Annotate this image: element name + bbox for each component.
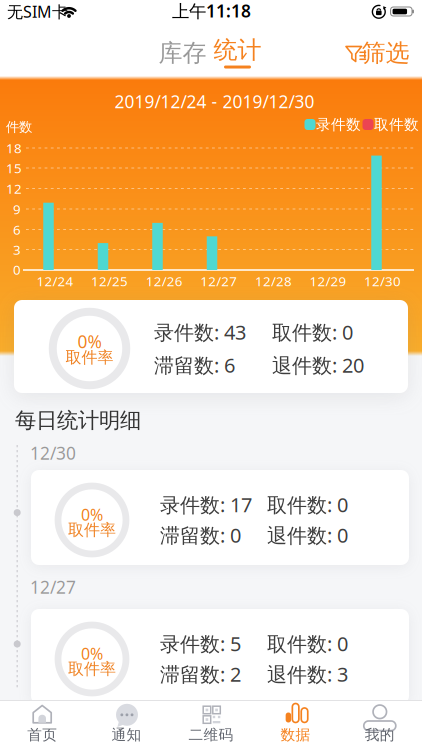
- staticText: 0: [13, 261, 21, 278]
- button[interactable]: 数据: [253, 701, 338, 750]
- staticText: 取件数: 0: [267, 630, 348, 657]
- staticText: 滞留数: 6: [154, 352, 235, 378]
- staticText: 12/24: [36, 272, 73, 290]
- staticText: 取件数: 0: [272, 319, 353, 345]
- staticText: 退件数: 0: [267, 522, 348, 548]
- button[interactable]: 二维码: [169, 701, 253, 750]
- button[interactable]: 统计: [207, 36, 267, 76]
- staticText: 录件数: 5: [160, 630, 241, 657]
- staticText: 录件数: [316, 115, 361, 133]
- button[interactable]: 通知: [84, 701, 169, 750]
- staticText: 取件数: [374, 115, 419, 133]
- staticText: 通知: [112, 726, 142, 744]
- staticText: 录件数: 43: [154, 319, 246, 345]
- staticText: 12/25: [91, 272, 128, 290]
- staticText: 退件数: 3: [267, 661, 348, 687]
- staticText: 12/27: [200, 272, 237, 290]
- staticText: 取件率: [68, 520, 116, 540]
- staticText: 取件数: 0: [267, 491, 348, 518]
- staticText: 6: [13, 221, 21, 238]
- staticText: 12: [6, 180, 22, 197]
- staticText: 12/27: [30, 575, 76, 598]
- staticText: 滞留数: 0: [160, 522, 241, 548]
- staticText: 录件数: 17: [160, 491, 252, 518]
- staticText: 12/29: [309, 272, 346, 290]
- staticText: 9: [13, 200, 21, 218]
- staticText: 退件数: 20: [272, 352, 364, 378]
- button[interactable]: 我的: [338, 701, 422, 750]
- staticText: 取件率: [68, 659, 116, 679]
- staticText: 滞留数: 2: [160, 661, 241, 687]
- staticText: 18: [6, 139, 22, 157]
- button[interactable]: 首页: [0, 701, 84, 750]
- staticText: 每日统计明细: [15, 407, 141, 434]
- staticText: 上午11:18: [172, 0, 251, 22]
- staticText: 0%: [81, 504, 103, 525]
- staticText: 二维码: [188, 726, 233, 744]
- staticText: 12/30: [30, 441, 76, 464]
- staticText: 件数: [6, 119, 32, 135]
- staticText: 我的: [365, 726, 395, 744]
- staticText: 无SIM卡: [7, 1, 68, 22]
- staticText: 3: [13, 241, 21, 258]
- button[interactable]: 库存: [152, 33, 212, 73]
- staticText: 取件率: [65, 347, 113, 367]
- staticText: 筛选: [361, 38, 409, 68]
- button[interactable]: 筛选: [337, 36, 411, 70]
- staticText: 12/26: [146, 272, 183, 290]
- staticText: 首页: [27, 726, 57, 744]
- staticText: 2019/12/24 - 2019/12/30: [114, 90, 314, 113]
- staticText: 0%: [77, 330, 101, 353]
- staticText: 数据: [280, 726, 310, 744]
- staticText: 库存: [158, 38, 206, 68]
- staticText: 统计: [213, 35, 261, 65]
- staticText: 15: [6, 159, 22, 177]
- staticText: 12/28: [255, 272, 292, 290]
- staticText: 0%: [81, 643, 103, 664]
- staticText: 12/30: [364, 272, 401, 290]
